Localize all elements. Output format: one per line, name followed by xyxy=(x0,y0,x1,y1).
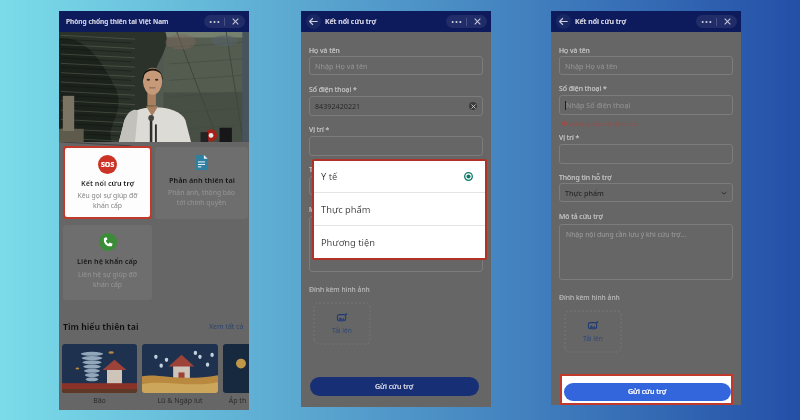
button[interactable]: Thực phẩm xyxy=(565,183,727,202)
staticText: Kết nối cứu trợ xyxy=(575,17,627,27)
button[interactable] xyxy=(565,144,727,164)
staticText: Thực phẩm xyxy=(565,188,604,198)
button[interactable] xyxy=(315,136,477,156)
button[interactable]: Back xyxy=(556,14,571,29)
staticText: Kết nối cứu trợ xyxy=(325,17,377,27)
button[interactable]: Close xyxy=(467,15,487,28)
button[interactable]: Tải lên xyxy=(565,311,621,352)
staticText: Gửi cứu trợ xyxy=(628,387,667,397)
staticText: M xyxy=(309,205,316,214)
staticText: 84392420221 xyxy=(315,101,361,111)
button[interactable]: Gửi cứu trợ xyxy=(310,377,479,396)
staticText: Vui lòng nhập số điện thoại xyxy=(569,120,639,127)
button[interactable]: Close xyxy=(225,15,245,28)
staticText: Lũ & Ngập lut xyxy=(142,396,218,406)
staticText: Kêu gọi sự giúp đỡ khẩn cấp xyxy=(65,191,150,210)
button[interactable]: Nhập nội dung cần lưu ý khi cứu trợ... xyxy=(566,230,733,280)
staticText: Vị trí * xyxy=(309,125,330,134)
staticText: Thông tin hỗ trợ xyxy=(559,173,612,182)
button[interactable]: More options xyxy=(696,15,716,28)
button[interactable]: 84392420221 xyxy=(315,96,477,116)
staticText: Mô tả cứu trợ xyxy=(559,212,603,221)
staticText: Số điện thoại * xyxy=(309,85,357,94)
staticText: Phản ánh, thông báo tới chính quyền xyxy=(155,188,248,207)
staticText: Y tế xyxy=(321,170,338,183)
button[interactable]: Nhập Họ và tên xyxy=(315,56,477,75)
staticText: Tìm hiểu thiên tai xyxy=(63,321,139,333)
staticText: Nhập Họ và tên xyxy=(315,61,368,71)
button[interactable]: More options xyxy=(446,15,466,28)
staticText: Vị trí * xyxy=(559,133,580,142)
staticText: Thực phẩm xyxy=(321,203,371,216)
staticText: Tải lên xyxy=(583,334,603,343)
button[interactable]: Nhập Số điện thoại xyxy=(565,95,727,115)
button[interactable]: More options xyxy=(204,15,224,28)
staticText: Phương tiện xyxy=(321,236,375,249)
staticText: SOS xyxy=(101,160,115,170)
staticText: Liên hệ khẩn cấp xyxy=(77,256,138,266)
staticText: Kết nối cứu trợ xyxy=(81,178,135,188)
staticText: Họ và tên xyxy=(559,46,590,55)
button[interactable]: Phản ánh thiên tai xyxy=(155,147,248,219)
staticText: Đính kèm hình ảnh xyxy=(559,293,620,302)
staticText: Số điện thoại * xyxy=(559,84,607,93)
button[interactable]: Thực phẩm xyxy=(321,193,473,225)
staticText: Áp th xyxy=(223,396,249,406)
staticText: Bão xyxy=(62,396,137,406)
button[interactable]: Back xyxy=(306,14,321,29)
staticText: Phòng chống thiên tai Việt Nam xyxy=(66,17,169,26)
staticText: Nhập Họ và tên xyxy=(565,61,618,71)
button[interactable] xyxy=(315,176,477,195)
button[interactable]: Liên hệ khẩn cấp xyxy=(63,225,152,300)
button[interactable]: SOS xyxy=(65,148,150,217)
button[interactable]: Xem tất cả xyxy=(209,322,244,332)
staticText: Gửi cứu trợ xyxy=(375,382,414,392)
staticText: Xem tất cả xyxy=(209,322,244,332)
button[interactable]: Tải lên xyxy=(314,303,370,344)
button[interactable]: Phương tiện xyxy=(321,226,473,258)
button[interactable]: Close xyxy=(717,15,737,28)
staticText: Liên hệ sự giúp đỡ khẩn cấp xyxy=(63,270,152,289)
staticText: Phản ánh thiên tai xyxy=(169,175,235,185)
staticText: T xyxy=(309,165,313,174)
staticText: Họ và tên xyxy=(309,46,340,55)
staticText: Nhập Số điện thoại xyxy=(566,100,631,110)
staticText: Tải lên xyxy=(332,326,352,335)
button[interactable]: Gửi cứu trợ xyxy=(564,383,731,401)
button[interactable]: Y tế xyxy=(321,161,473,192)
staticText: Nhập nội dung cần lưu ý khi cứu trợ... xyxy=(566,230,687,239)
button[interactable]: Nhập Họ và tên xyxy=(565,56,727,75)
staticText: Đính kèm hình ảnh xyxy=(309,285,370,294)
